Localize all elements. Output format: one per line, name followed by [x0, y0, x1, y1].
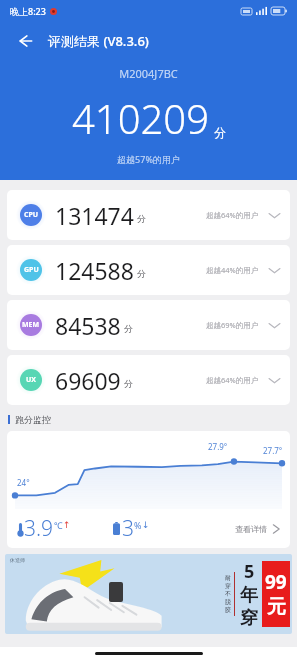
- staticText: 分: [124, 323, 133, 334]
- staticText: ↑: [63, 520, 71, 530]
- staticText: 超越69%的用户: [206, 320, 259, 330]
- staticText: 查看详情: [235, 524, 267, 534]
- button[interactable]: UX: [7, 355, 290, 405]
- staticText: 超越57%的用户: [0, 153, 297, 165]
- staticText: 124588: [55, 255, 134, 286]
- staticText: 131474: [55, 200, 134, 231]
- staticText: 分: [124, 378, 133, 389]
- staticText: 超越44%的用户: [206, 265, 259, 275]
- staticText: 84538: [55, 310, 121, 341]
- staticText: 不: [225, 590, 231, 598]
- staticText: 年: [240, 584, 258, 607]
- staticText: 5: [244, 559, 255, 584]
- other: Expand: [268, 374, 281, 387]
- staticText: 穿: [225, 582, 231, 590]
- staticText: 3.9: [24, 514, 54, 543]
- staticText: 27.7°: [263, 445, 283, 456]
- button[interactable]: 24°: [7, 431, 290, 548]
- staticText: 69609: [55, 365, 121, 396]
- button[interactable]: Back: [12, 28, 38, 54]
- button[interactable]: 查看详情: [235, 522, 281, 536]
- staticText: 休造师: [10, 557, 25, 563]
- staticText: UX: [26, 375, 36, 385]
- staticText: 评测结果 (V8.3.6): [48, 32, 149, 50]
- staticText: 耐: [225, 574, 231, 582]
- button[interactable]: CPU: [7, 190, 290, 240]
- staticText: 跑分监控: [15, 414, 51, 425]
- staticText: 超越64%的用户: [206, 210, 259, 220]
- staticText: ↓: [142, 520, 150, 530]
- staticText: 24°: [17, 477, 30, 488]
- staticText: ℃: [54, 519, 63, 531]
- staticText: 胶: [225, 606, 231, 614]
- button[interactable]: GPU: [7, 245, 290, 295]
- other: Expand: [268, 264, 281, 277]
- staticText: 穿: [240, 607, 258, 630]
- staticText: 分: [214, 125, 226, 140]
- staticText: 超越64%的用户: [206, 375, 259, 385]
- staticText: 分: [137, 268, 146, 279]
- other: Expand: [268, 319, 281, 332]
- staticText: 3: [122, 514, 134, 543]
- staticText: 410209: [72, 91, 210, 145]
- staticText: GPU: [24, 265, 39, 275]
- staticText: 分: [137, 213, 146, 224]
- staticText: CPU: [24, 210, 39, 220]
- staticText: 27.9°: [208, 441, 228, 452]
- staticText: MEM: [22, 320, 40, 330]
- staticText: 脱: [225, 598, 231, 606]
- staticText: 99: [265, 569, 287, 595]
- staticText: 晚上8:23: [10, 5, 46, 17]
- button[interactable]: Advertisement: [5, 554, 292, 634]
- staticText: %: [134, 519, 142, 531]
- staticText: 元: [267, 595, 286, 619]
- button[interactable]: MEM: [7, 300, 290, 350]
- other: Expand: [268, 209, 281, 222]
- staticText: M2004J7BC: [0, 66, 297, 81]
